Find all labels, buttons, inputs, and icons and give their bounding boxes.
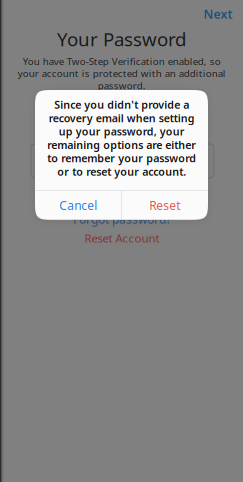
button[interactable]: Forgot password? xyxy=(67,212,177,226)
staticText: Since you didn't provide a recovery emai… xyxy=(47,98,196,178)
staticText: Your Password xyxy=(57,27,186,51)
button[interactable]: Cancel xyxy=(35,191,121,220)
staticText: Next xyxy=(203,6,232,22)
staticText: Cancel xyxy=(59,198,97,213)
staticText: You have Two-Step Verification enabled, … xyxy=(17,55,225,92)
staticText: Forgot password? xyxy=(73,211,171,226)
button[interactable]: Reset xyxy=(122,191,208,220)
button[interactable]: Next xyxy=(198,4,238,24)
staticText: Reset Account xyxy=(84,231,159,245)
staticText: Reset xyxy=(149,198,180,213)
button[interactable]: Reset Account xyxy=(72,231,172,245)
